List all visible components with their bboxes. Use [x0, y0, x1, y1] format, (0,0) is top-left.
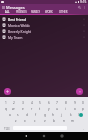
- button[interactable]: ?123: [2, 126, 11, 131]
- staticText: f: [35, 113, 37, 117]
- button[interactable]: s: [14, 112, 21, 118]
- button[interactable]: j: [58, 112, 65, 118]
- button[interactable]: 5: [36, 100, 43, 106]
- staticText: b: [53, 119, 55, 123]
- staticText: 5: [39, 101, 41, 105]
- staticText: 2: [13, 101, 15, 105]
- staticText: FAMILY: [31, 10, 40, 14]
- staticText: y: [48, 107, 50, 111]
- button[interactable]: n: [60, 118, 67, 124]
- staticText: Best Friend: [8, 17, 26, 22]
- button[interactable]: Beverly Knight: [0, 28, 88, 34]
- button[interactable]: 3: [19, 100, 26, 106]
- staticText: OTHER: [59, 10, 68, 14]
- button[interactable]: w: [10, 106, 17, 112]
- button[interactable]: Recent apps: [58, 132, 66, 140]
- button[interactable]: v: [41, 118, 48, 124]
- staticText: WORK: [45, 10, 53, 14]
- staticText: ?123: [4, 127, 10, 131]
- button[interactable]: Home: [40, 132, 48, 140]
- button[interactable]: My Team: [0, 34, 88, 40]
- button[interactable]: Send: [79, 113, 83, 117]
- staticText: 9:15: [80, 0, 87, 4]
- staticText: Messages: [6, 5, 25, 10]
- staticText: w: [12, 107, 15, 111]
- button[interactable]: q: [2, 106, 9, 112]
- button[interactable]: d: [23, 112, 30, 118]
- staticText: c: [34, 119, 36, 123]
- button[interactable]: y: [45, 106, 52, 112]
- button[interactable]: b: [50, 118, 57, 124]
- staticText: r: [31, 107, 33, 111]
- button[interactable]: 8: [62, 100, 69, 106]
- button[interactable]: 0: [79, 100, 86, 106]
- staticText: Monica Webb: [8, 23, 30, 28]
- button[interactable]: 2: [10, 100, 17, 106]
- staticText: i: [65, 107, 66, 111]
- staticText: o: [74, 107, 76, 111]
- button[interactable]: i: [62, 106, 69, 112]
- staticText: l: [78, 113, 79, 117]
- button[interactable]: ALL: [0, 10, 14, 14]
- button[interactable]: t: [36, 106, 43, 112]
- button[interactable]: x: [21, 118, 28, 124]
- button[interactable]: Open navigation drawer: [0, 4, 6, 10]
- button[interactable]: WORK: [42, 10, 56, 14]
- staticText: FRIENDS: [16, 10, 27, 14]
- button[interactable]: Voice input: [76, 88, 83, 95]
- staticText: ALL: [5, 10, 10, 14]
- button[interactable]: u: [53, 106, 60, 112]
- staticText: k: [70, 113, 72, 117]
- button[interactable]: e: [19, 106, 26, 112]
- button[interactable]: k: [67, 112, 74, 118]
- button[interactable]: r: [28, 106, 35, 112]
- button[interactable]: c: [31, 118, 38, 124]
- staticText: a: [9, 113, 11, 117]
- staticText: 9: [74, 101, 76, 105]
- staticText: v: [44, 119, 46, 123]
- button[interactable]: p: [79, 106, 86, 112]
- button[interactable]: Best Friend: [0, 16, 88, 22]
- button[interactable]: Search: [76, 4, 82, 10]
- staticText: 1: [5, 101, 7, 105]
- button[interactable]: FAMILY: [28, 10, 42, 14]
- staticText: u: [56, 107, 58, 111]
- staticText: 3: [22, 101, 24, 105]
- button[interactable]: o: [71, 106, 78, 112]
- button[interactable]: More options: [82, 4, 87, 10]
- staticText: 6: [48, 101, 50, 105]
- button[interactable]: OTHER: [56, 10, 70, 14]
- button[interactable]: FRIENDS: [14, 10, 28, 14]
- button[interactable]: New conversation: [4, 88, 11, 95]
- button[interactable]: Monica Webb: [0, 22, 88, 28]
- button[interactable]: m: [69, 118, 76, 124]
- button[interactable]: 7: [53, 100, 60, 106]
- staticText: m: [71, 119, 74, 123]
- button[interactable]: g: [41, 112, 48, 118]
- staticText: 7: [56, 101, 58, 105]
- staticText: .: [83, 127, 84, 131]
- staticText: n: [63, 119, 65, 123]
- staticText: 0: [82, 101, 84, 105]
- button[interactable]: 1: [2, 100, 9, 106]
- staticText: d: [26, 113, 28, 117]
- button[interactable]: f: [32, 112, 39, 118]
- staticText: x: [24, 119, 26, 123]
- button[interactable]: h: [49, 112, 56, 118]
- button[interactable]: a: [6, 112, 13, 118]
- staticText: s: [17, 113, 19, 117]
- button[interactable]: z: [12, 118, 19, 124]
- button[interactable]: 9: [71, 100, 78, 106]
- button[interactable]: l: [75, 112, 82, 118]
- staticText: 8: [65, 101, 67, 105]
- staticText: p: [82, 107, 84, 111]
- button[interactable]: 4: [28, 100, 35, 106]
- button[interactable]: 6: [45, 100, 52, 106]
- button[interactable]: Back: [22, 132, 30, 140]
